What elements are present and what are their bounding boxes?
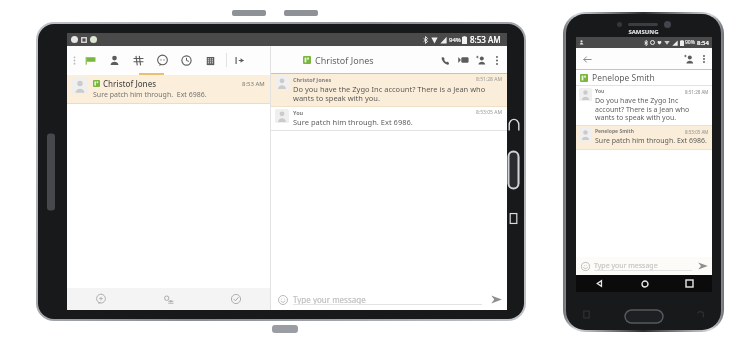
button[interactable]: Keypad [126,48,150,72]
staticText: 90% [685,39,695,46]
staticText: Sure patch him through. Ext 6986. [595,136,707,146]
staticText: Sure patch him through. Ext 6986. [93,90,207,100]
button[interactable]: Directory [198,48,222,72]
staticText: 94% [449,36,461,44]
button[interactable]: Christof Jones [67,75,270,104]
button[interactable]: Emoji [276,293,289,306]
button[interactable]: Back [579,51,595,67]
button[interactable]: Back [576,275,622,292]
staticText: 8:53 AM [470,34,501,45]
staticText: Christof Jones [293,76,332,83]
staticText: Do you have the Zygo Inc account? There … [293,84,503,103]
button[interactable]: Chats [150,48,174,72]
button[interactable]: New chat [67,288,134,310]
button[interactable]: Send [488,291,504,307]
button[interactable]: Home [622,275,667,292]
button[interactable]: History [174,48,198,72]
staticText: Christof Jones [103,78,157,89]
staticText: 8:51:28 AM [476,76,503,83]
button[interactable]: Recents [667,275,712,292]
button[interactable]: Penelope Smith [576,70,712,85]
button[interactable]: Emoji [579,260,591,272]
button[interactable]: Sign out [231,52,247,68]
staticText: You [595,88,605,95]
button[interactable]: Send [696,259,710,273]
button[interactable]: Status [202,288,270,310]
button[interactable]: Broadcast [134,288,202,310]
staticText: 8:53:05 AM [685,129,709,135]
staticText: Do you have the Zygo Inc account? There … [595,96,709,122]
button[interactable]: Messages [78,48,102,72]
button[interactable]: More options [697,52,710,65]
button[interactable]: Contacts [102,48,126,72]
staticText: 8:51:28 AM [685,89,709,95]
staticText: SAMSUNG [628,28,659,36]
button[interactable]: Add people [681,51,697,67]
staticText: Sure patch him through. Ext 6986. [293,117,413,127]
button[interactable]: Menu [70,50,78,70]
staticText: Type your message [293,294,366,305]
staticText: Penelope Smith [592,72,655,84]
staticText: 8:53:05 AM [476,109,503,116]
button[interactable]: Add people [472,51,490,69]
button[interactable]: More options [490,53,504,67]
staticText: Christof Jones [315,54,374,66]
button[interactable]: Call [436,51,454,69]
staticText: Type your message [594,261,658,271]
button[interactable]: Video call [454,51,472,69]
staticText: Penelope Smith [595,128,634,135]
staticText: 8:53 AM [242,80,265,88]
staticText: You [293,109,304,116]
staticText: 8:54 [697,39,709,47]
